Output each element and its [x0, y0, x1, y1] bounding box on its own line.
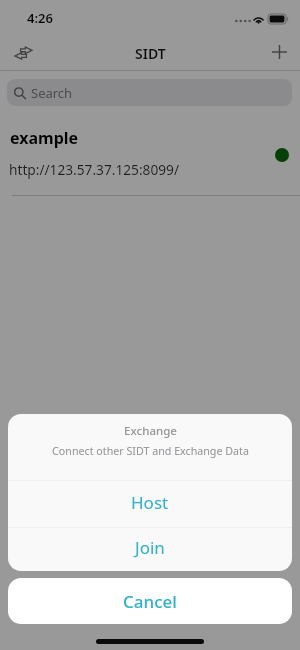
button[interactable]: Add	[264, 37, 294, 67]
button[interactable]: Transfer	[7, 38, 37, 68]
staticText: 4:26	[27, 9, 53, 27]
staticText: Connect other SIDT and Exchange Data	[52, 444, 249, 459]
staticText: Join	[135, 536, 165, 559]
staticText: Exchange	[124, 423, 177, 439]
staticText: Cancel	[123, 590, 177, 613]
staticText: SIDT	[135, 44, 166, 63]
button[interactable]: example	[0, 115, 300, 196]
button[interactable]: Cancel	[8, 578, 292, 624]
staticText: Host	[131, 491, 169, 514]
button[interactable]: Host	[8, 481, 292, 527]
staticText: http://123.57.37.125:8099/	[9, 160, 179, 179]
staticText: Search	[31, 84, 73, 102]
button[interactable]: Join	[8, 528, 292, 571]
staticText: example	[10, 127, 79, 149]
button[interactable]: Search	[7, 79, 292, 106]
